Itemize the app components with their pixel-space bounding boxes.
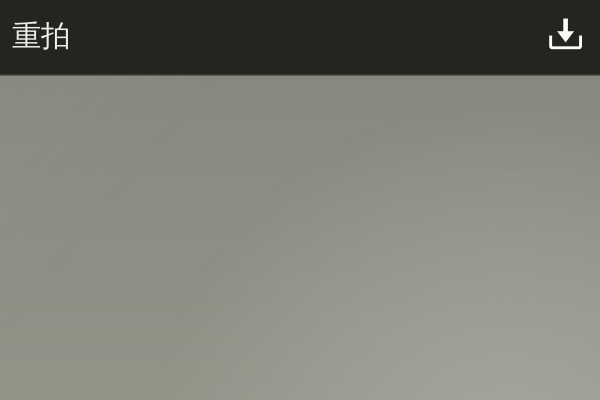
staticText: 重拍 (12, 18, 70, 54)
button[interactable]: Save to album (533, 0, 600, 74)
button[interactable]: 重拍 (0, 0, 98, 74)
